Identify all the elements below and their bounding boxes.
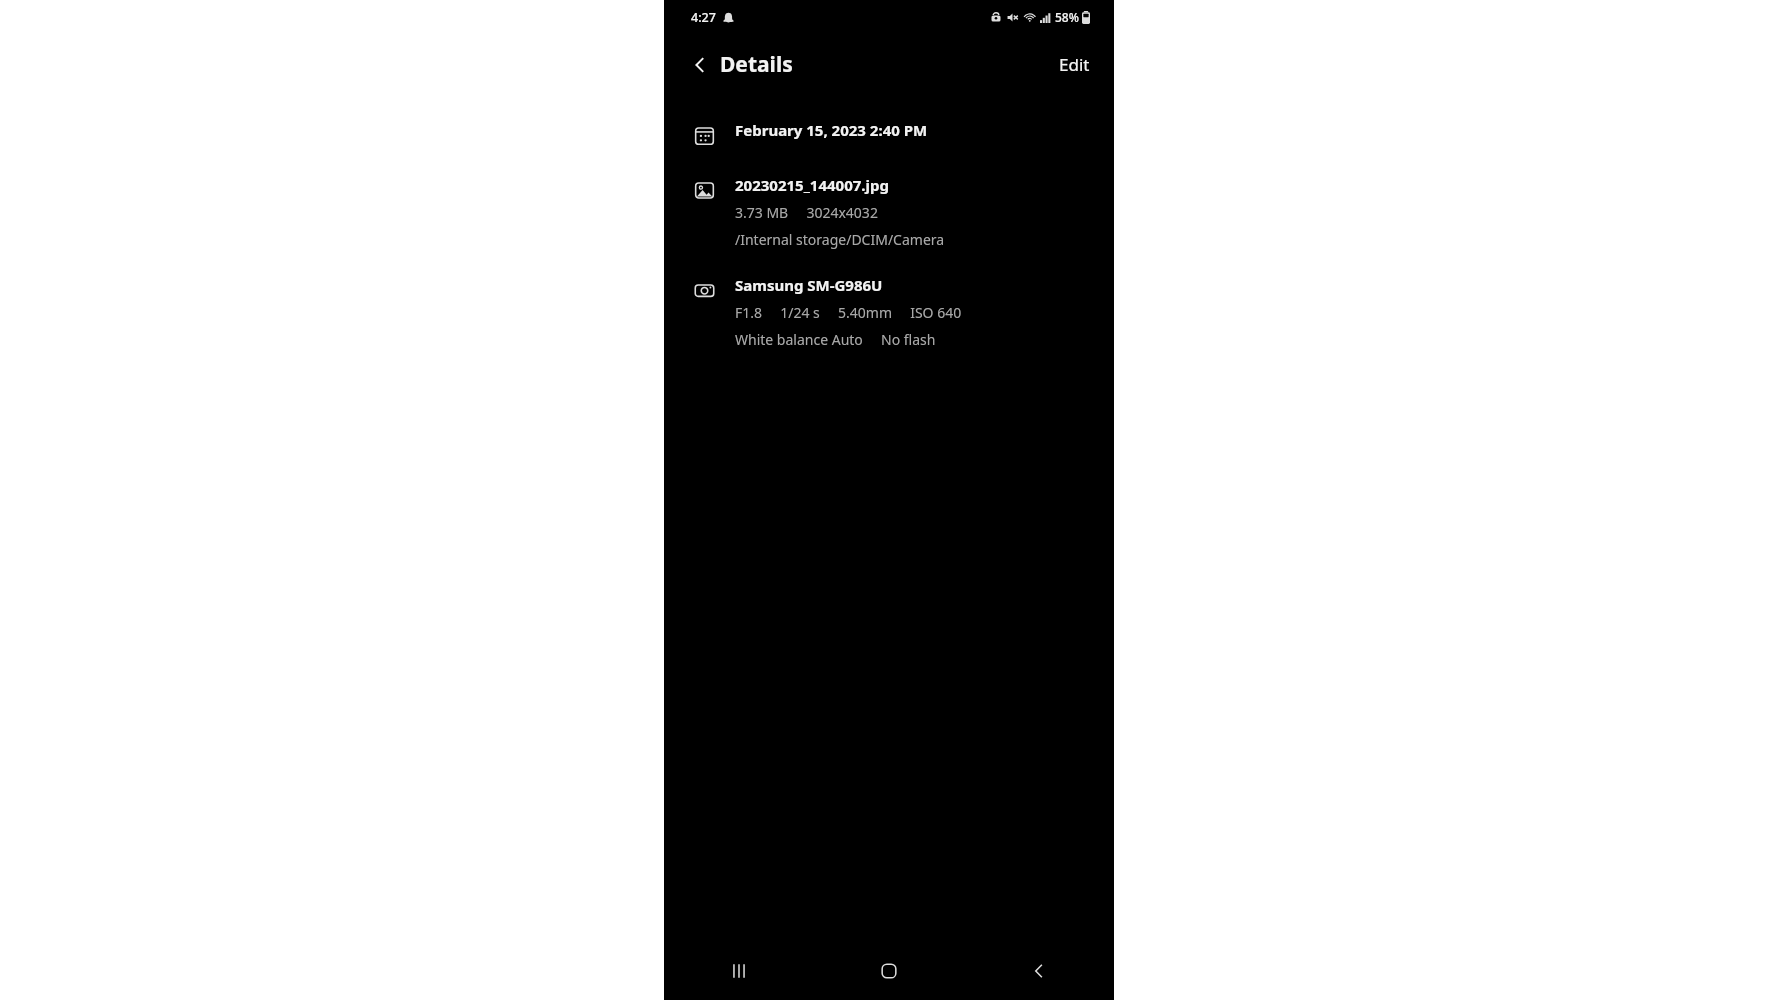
button[interactable]: Date [664,116,1114,151]
staticText: Samsung SM-G986U [735,275,883,295]
button[interactable]: Recents [664,942,814,1000]
staticText: 4:27 [691,9,716,26]
staticText: White balance Auto No flash [735,330,936,349]
staticText: 3.73 MB 3024x4032 [735,203,878,222]
staticText: Edit [1059,53,1090,76]
button[interactable]: File [664,171,1114,253]
other: Back [688,53,712,77]
button[interactable]: Home [814,942,964,1000]
other: Camera [692,278,716,302]
button[interactable]: Back [682,44,799,85]
other: File [692,178,716,202]
staticText: February 15, 2023 2:40 PM [735,120,928,140]
button[interactable]: Edit [1051,45,1098,84]
staticText: F1.8 1/24 s 5.40mm ISO 640 [735,303,962,322]
staticText: /Internal storage/DCIM/Camera [735,230,945,249]
staticText: 20230215_144007.jpg [735,175,889,195]
button[interactable]: Camera [664,271,1114,353]
staticText: 58% [1055,9,1079,25]
other: Date [692,123,716,147]
button[interactable]: Back [964,942,1114,1000]
staticText: Details [720,50,793,79]
